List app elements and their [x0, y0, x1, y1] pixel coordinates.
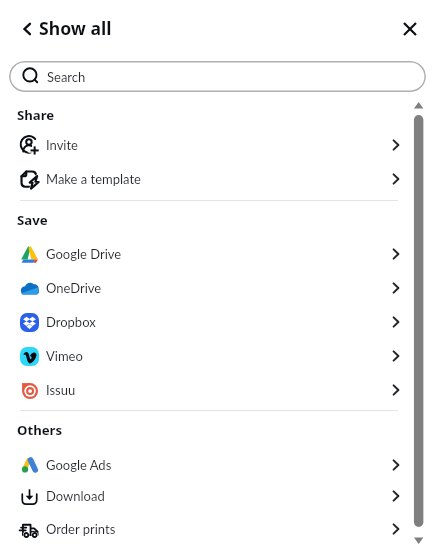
button[interactable]: Google Drive: [0, 238, 436, 270]
button[interactable]: Dropbox: [0, 306, 436, 338]
button[interactable]: Close: [393, 12, 427, 46]
staticText: Make a template: [46, 171, 141, 187]
button[interactable]: Google Ads: [0, 449, 436, 481]
button[interactable]: Invite: [0, 129, 436, 161]
button[interactable]: Search: [9, 61, 426, 92]
staticText: Show all: [39, 16, 112, 40]
button[interactable]: Vimeo: [0, 340, 436, 372]
staticText: Search: [47, 69, 86, 85]
staticText: OneDrive: [46, 280, 102, 296]
staticText: Google Ads: [46, 457, 112, 473]
staticText: Share: [17, 106, 55, 124]
staticText: Others: [17, 421, 63, 439]
staticText: Dropbox: [46, 314, 96, 330]
button[interactable]: OneDrive: [0, 272, 436, 304]
button[interactable]: Make a template: [0, 163, 436, 195]
button[interactable]: Download: [0, 480, 436, 512]
staticText: Invite: [46, 137, 78, 153]
button[interactable]: Order prints: [0, 513, 436, 545]
staticText: Vimeo: [46, 348, 83, 364]
staticText: Google Drive: [46, 246, 122, 262]
staticText: Download: [46, 488, 105, 504]
button[interactable]: Scroll: [409, 100, 429, 546]
staticText: Order prints: [46, 521, 116, 537]
button[interactable]: Issuu: [0, 374, 436, 406]
staticText: Save: [17, 211, 48, 229]
button[interactable]: Back: [12, 13, 44, 45]
staticText: Issuu: [46, 382, 76, 398]
